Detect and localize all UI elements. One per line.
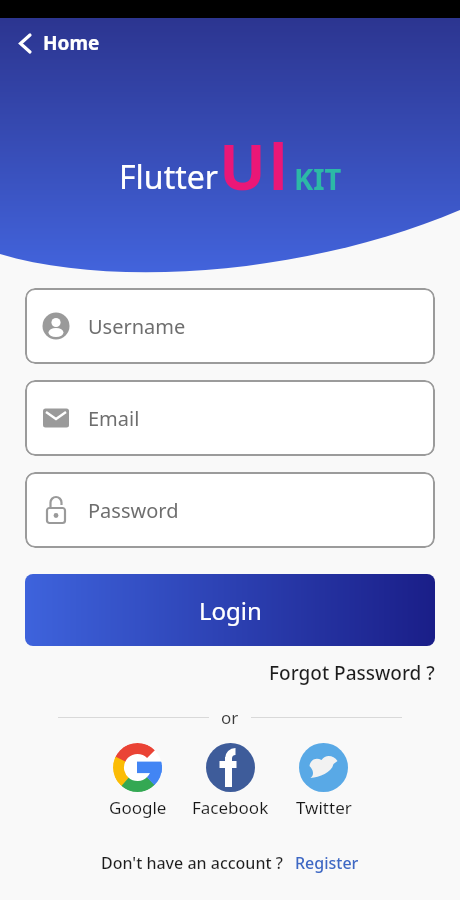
- staticText: Login: [199, 594, 262, 627]
- button[interactable]: Twitter: [277, 743, 370, 819]
- button[interactable]: Email: [25, 380, 435, 456]
- staticText: Register: [295, 852, 359, 874]
- staticText: Flutter: [119, 155, 219, 199]
- staticText: Google: [109, 796, 167, 819]
- staticText: KIT: [294, 159, 342, 198]
- staticText: Twitter: [296, 796, 352, 819]
- button[interactable]: Username: [25, 288, 435, 364]
- button[interactable]: Register: [295, 852, 359, 874]
- staticText: Username: [88, 313, 186, 340]
- staticText: U: [219, 124, 266, 208]
- staticText: Password: [88, 497, 179, 524]
- button[interactable]: Google: [91, 743, 184, 819]
- staticText: Home: [43, 30, 100, 56]
- button[interactable]: Home: [14, 30, 100, 56]
- staticText: Facebook: [192, 796, 269, 819]
- staticText: Email: [88, 405, 140, 432]
- staticText: or: [221, 706, 239, 729]
- button[interactable]: Password: [25, 472, 435, 548]
- staticText: l: [269, 124, 288, 208]
- button[interactable]: Forgot Password ?: [269, 660, 435, 686]
- button[interactable]: Facebook: [184, 743, 277, 819]
- button[interactable]: Login: [25, 574, 435, 646]
- staticText: Forgot Password ?: [269, 660, 435, 686]
- staticText: Don't have an account ?: [101, 852, 283, 874]
